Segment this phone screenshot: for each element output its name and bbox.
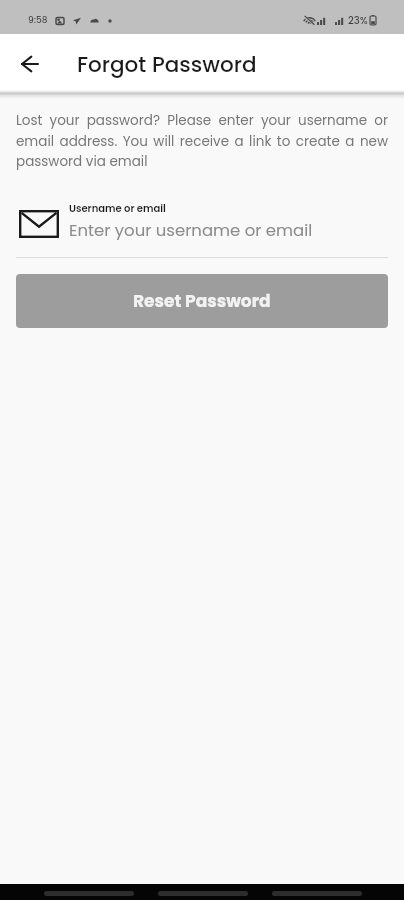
button[interactable]: Reset Password (16, 274, 388, 328)
staticText: Forgot Password (77, 49, 257, 79)
staticText: Username or email (69, 201, 166, 215)
staticText: 9:58 (28, 14, 48, 27)
button[interactable]: Recents (272, 891, 362, 896)
staticText: 23% (348, 13, 368, 27)
staticText: Reset Password (133, 289, 271, 313)
button[interactable]: Home (158, 891, 248, 896)
button[interactable]: Username or email (16, 205, 388, 242)
staticText: Lost your password? Please enter your us… (16, 111, 388, 170)
button[interactable]: Back (9, 43, 51, 85)
button[interactable]: Back (44, 891, 134, 896)
staticText: Enter your username or email (69, 219, 313, 242)
